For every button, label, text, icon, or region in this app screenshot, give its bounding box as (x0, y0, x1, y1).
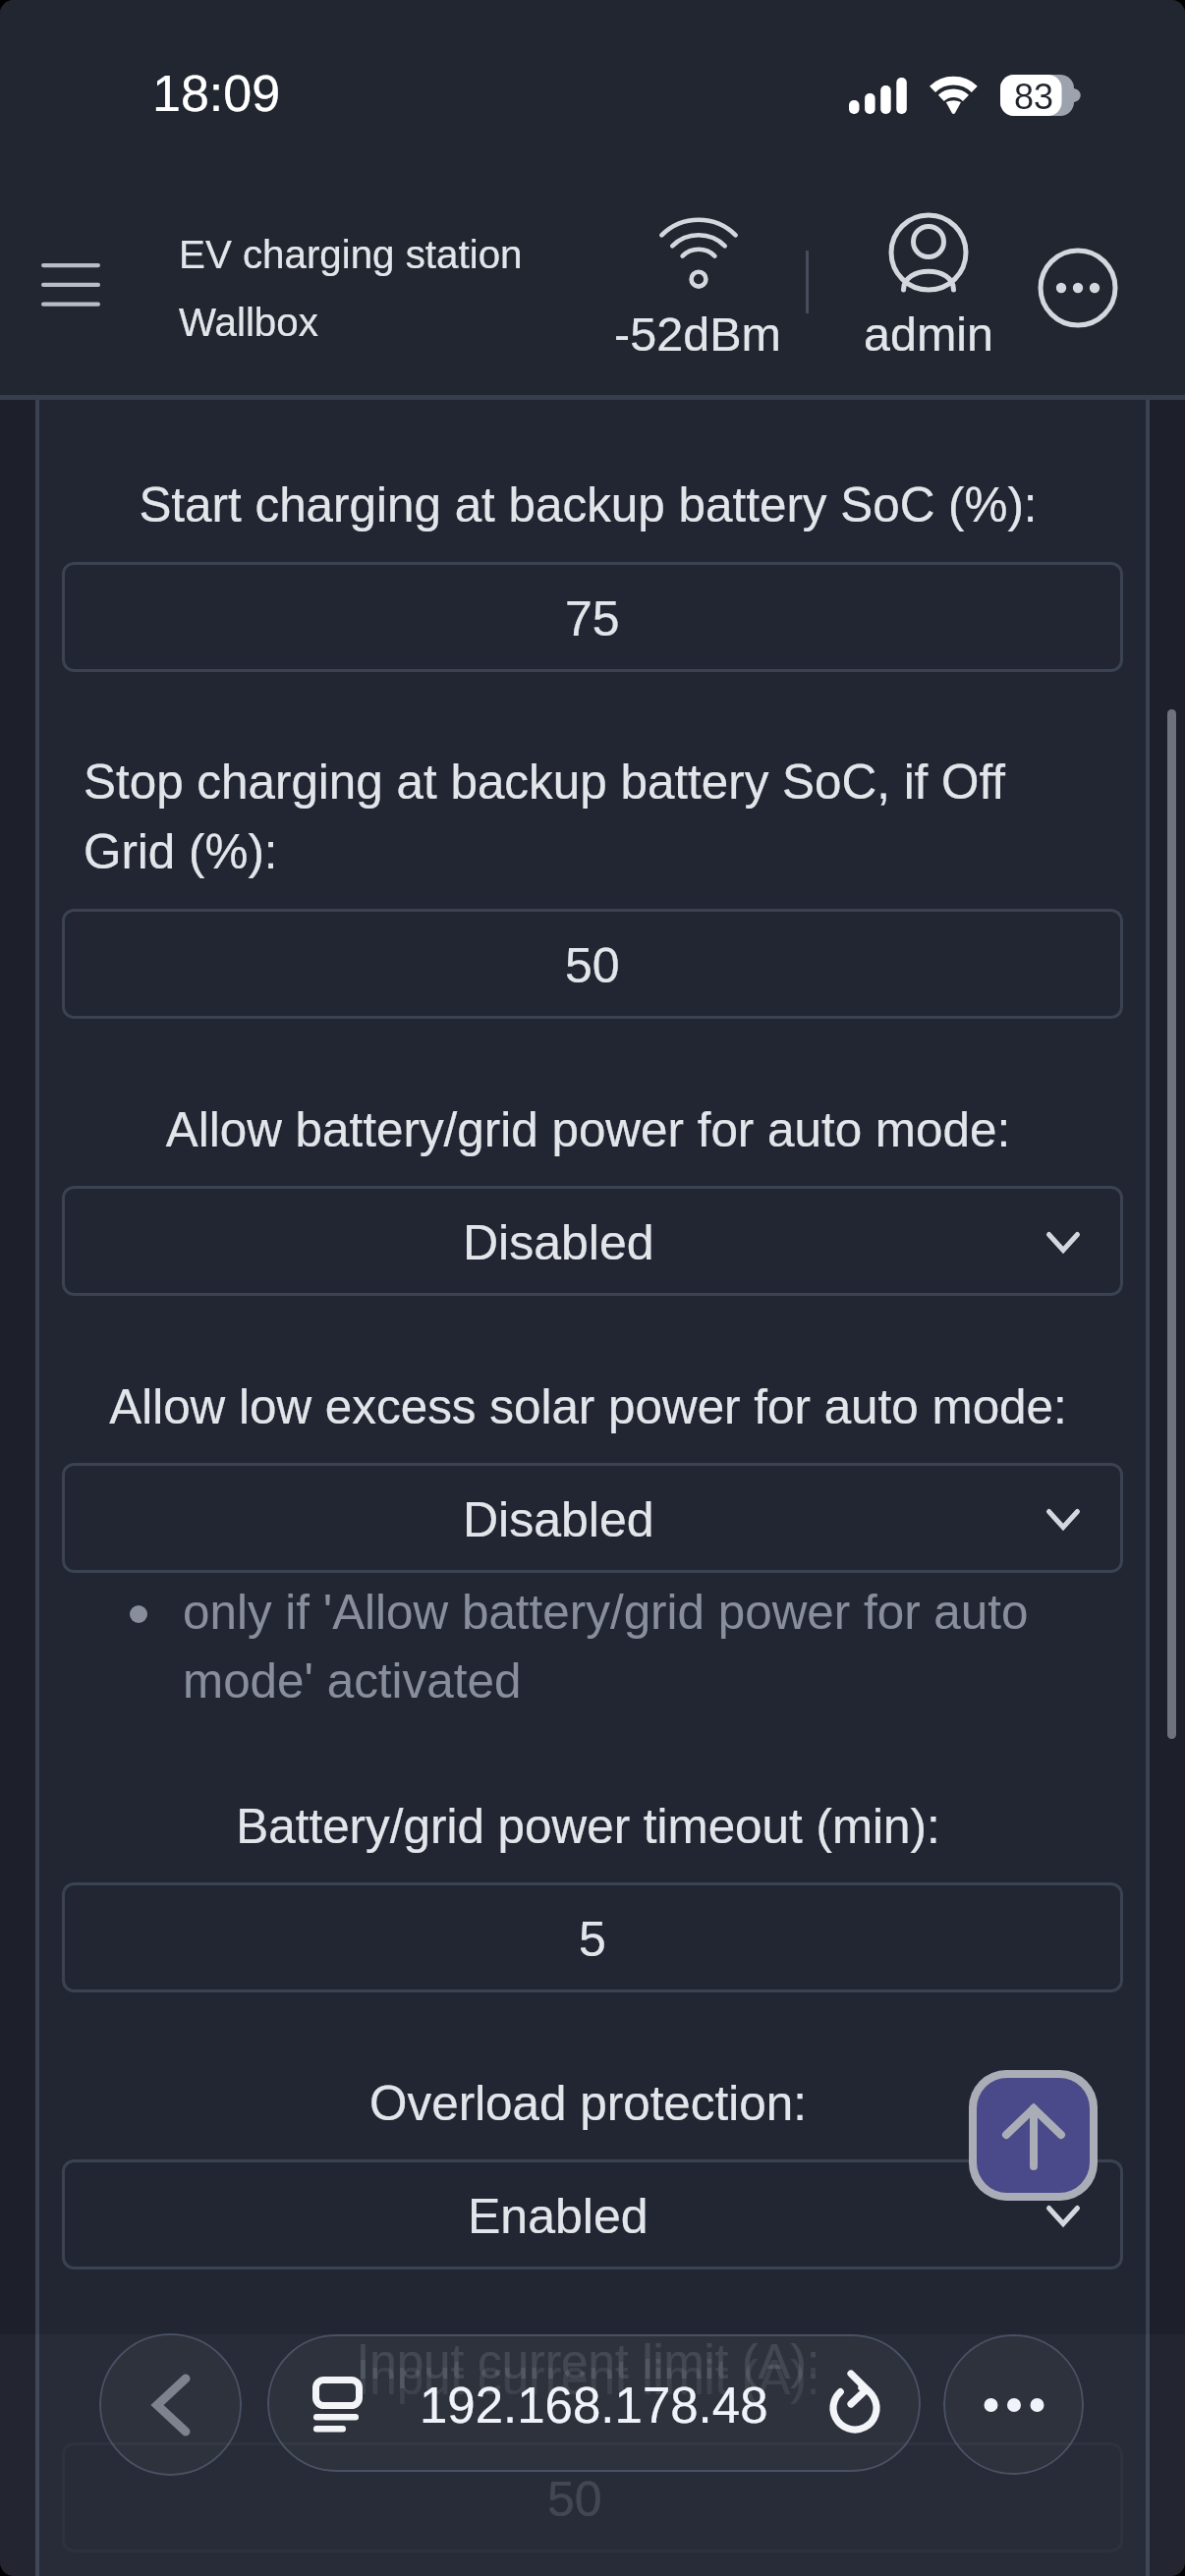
staticText: Overload protection: (84, 2076, 1093, 2130)
staticText: 18:09 (152, 65, 281, 122)
staticText: only if 'Allow battery/grid power for au… (183, 1585, 1047, 1708)
button[interactable]: Scroll to top (977, 2078, 1090, 2193)
staticText: Start charging at backup battery SoC (%)… (84, 477, 1093, 532)
button[interactable]: More options (1033, 243, 1123, 333)
button[interactable]: 75 (62, 562, 1123, 672)
staticText: Input current limit (A): (84, 2334, 1093, 2388)
staticText: 50 (547, 2472, 602, 2527)
button[interactable]: 50 (62, 2442, 1123, 2552)
button[interactable]: 50 (62, 909, 1123, 1019)
button[interactable]: Open navigation menu (24, 232, 118, 324)
staticText: Allow battery/grid power for auto mode: (84, 1102, 1093, 1156)
staticText: Input current limit (A): (84, 2350, 1093, 2404)
staticText: 5 (579, 1912, 606, 1967)
staticText: 192.168.178.48 (420, 2378, 768, 2434)
staticText: 83 (1014, 77, 1054, 116)
staticText: Stop charging at backup battery SoC, if … (84, 755, 1093, 878)
button[interactable]: Disabled (62, 1186, 1123, 1296)
button[interactable]: Back (99, 2333, 242, 2476)
staticText: Allow low excess solar power for auto mo… (84, 1379, 1093, 1433)
staticText: EV charging station (179, 233, 523, 277)
staticText: Disabled (463, 1492, 654, 1547)
button[interactable]: Browser menu (943, 2334, 1084, 2475)
button[interactable]: 5 (62, 1882, 1123, 1992)
button[interactable]: 192.168.178.48 (267, 2334, 921, 2472)
staticText: Disabled (463, 1215, 654, 1270)
staticText: Battery/grid power timeout (min): (84, 1799, 1093, 1853)
button[interactable]: Logged in as admin (833, 201, 1025, 366)
staticText: 75 (565, 591, 620, 646)
button[interactable]: Wi-Fi signal strength -52dBm (599, 201, 796, 366)
staticText: Wallbox (179, 301, 318, 345)
staticText: admin (859, 308, 998, 361)
button[interactable]: Disabled (62, 1463, 1123, 1573)
staticText: -52dBm (599, 308, 796, 361)
staticText: 50 (565, 938, 620, 993)
staticText: Enabled (468, 2189, 649, 2244)
button[interactable]: Enabled (62, 2159, 1123, 2269)
